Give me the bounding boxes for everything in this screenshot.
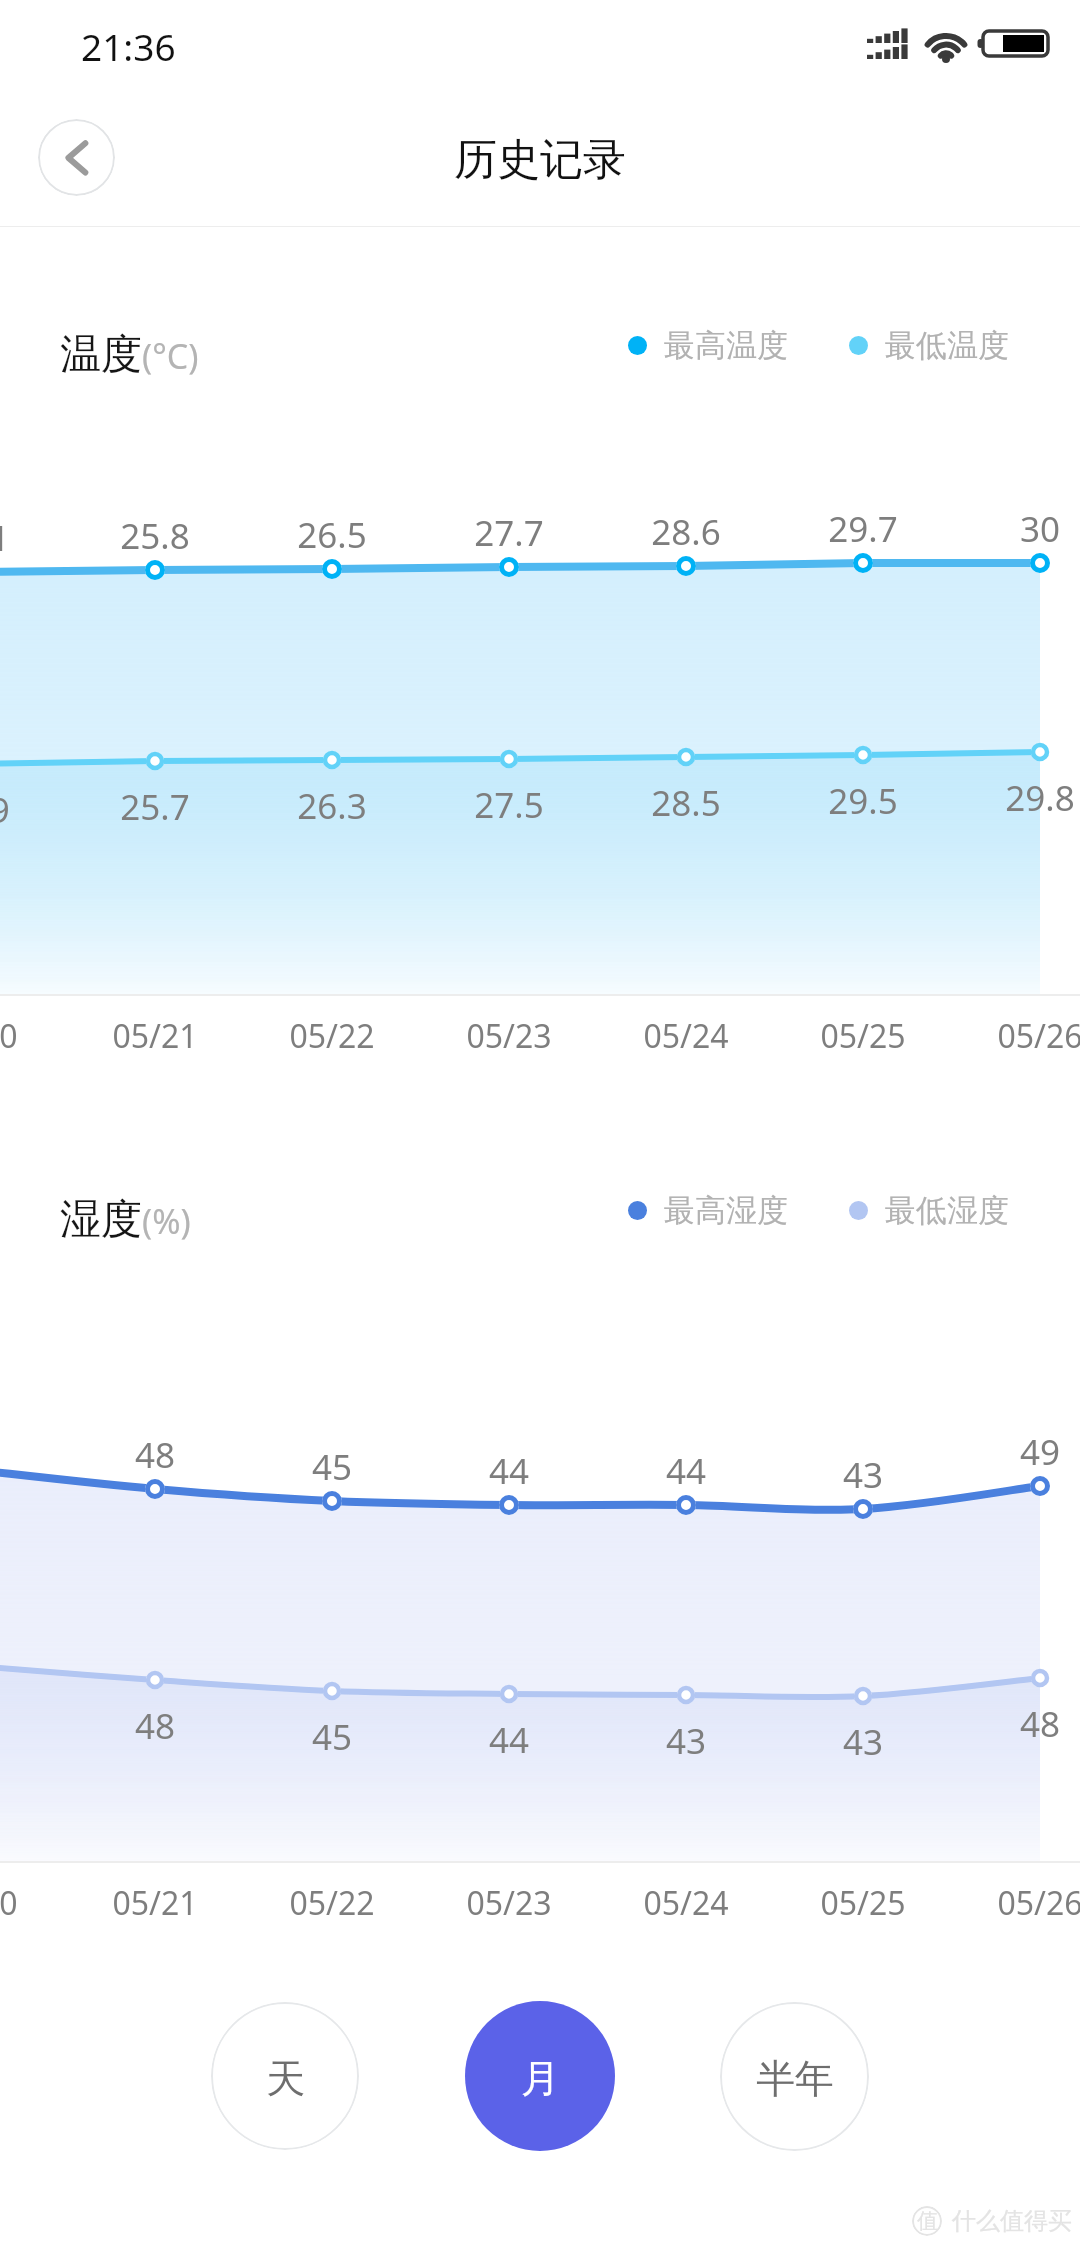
staticText: 半年 (756, 2054, 834, 2103)
staticText: 25.9 (0, 786, 75, 834)
staticText: 05/20 (0, 1014, 75, 1058)
staticText: 05/24 (586, 1881, 786, 1925)
staticText: 48 (55, 1431, 255, 1479)
button[interactable]: Back (38, 119, 115, 196)
staticText: 05/26 (940, 1014, 1080, 1058)
staticText: 44 (586, 1447, 786, 1495)
staticText: 05/23 (409, 1014, 609, 1058)
button[interactable]: 天 (211, 2002, 359, 2150)
staticText: 05/21 (55, 1014, 255, 1058)
staticText: 45 (232, 1443, 432, 1491)
staticText: 最高温度 (664, 326, 788, 365)
staticText: 43 (763, 1718, 963, 1766)
staticText: 什么值得买 (952, 2206, 1072, 2236)
staticText: 43 (586, 1717, 786, 1765)
staticText: 44 (409, 1447, 609, 1495)
button[interactable]: 月 (465, 2001, 615, 2151)
staticText: 最低湿度 (885, 1191, 1009, 1230)
staticText: 26.3 (232, 782, 432, 830)
staticText: 05/26 (940, 1881, 1080, 1925)
staticText: 温度 (60, 329, 142, 381)
staticText: 05/23 (409, 1881, 609, 1925)
staticText: 最低温度 (885, 326, 1009, 365)
staticText: 05/22 (232, 1014, 432, 1058)
staticText: 月 (521, 2054, 560, 2103)
staticText: 05/24 (586, 1014, 786, 1058)
staticText: 48 (940, 1700, 1080, 1748)
button[interactable]: 半年 (720, 2002, 869, 2151)
staticText: (°C) (142, 333, 199, 379)
staticText: 45 (232, 1713, 432, 1761)
staticText: 29.8 (940, 774, 1080, 822)
staticText: 29.7 (763, 505, 963, 553)
staticText: 43 (763, 1451, 963, 1499)
staticText: 27.7 (409, 509, 609, 557)
staticText: 49 (940, 1428, 1080, 1476)
staticText: 27.5 (409, 781, 609, 829)
staticText: (%) (142, 1198, 191, 1244)
staticText: 湿度 (60, 1194, 142, 1246)
staticText: 最高湿度 (664, 1191, 788, 1230)
staticText: 05/25 (763, 1014, 963, 1058)
staticText: 30 (940, 505, 1080, 553)
staticText: 25.7 (55, 783, 255, 831)
staticText: 25.1 (0, 514, 75, 562)
staticText: 05/20 (0, 1881, 75, 1925)
staticText: 28.6 (586, 508, 786, 556)
staticText: 21:36 (81, 21, 176, 71)
staticText: 25.8 (55, 512, 255, 560)
staticText: 05/21 (55, 1881, 255, 1925)
staticText: 历史记录 (0, 133, 1080, 187)
staticText: 29.5 (763, 777, 963, 825)
staticText: 26.5 (232, 511, 432, 559)
staticText: 天 (266, 2054, 305, 2103)
staticText: 值 (917, 2208, 938, 2234)
staticText: 28.5 (586, 779, 786, 827)
staticText: 05/25 (763, 1881, 963, 1925)
staticText: 05/22 (232, 1881, 432, 1925)
staticText: 44 (409, 1716, 609, 1764)
staticText: 48 (55, 1702, 255, 1750)
